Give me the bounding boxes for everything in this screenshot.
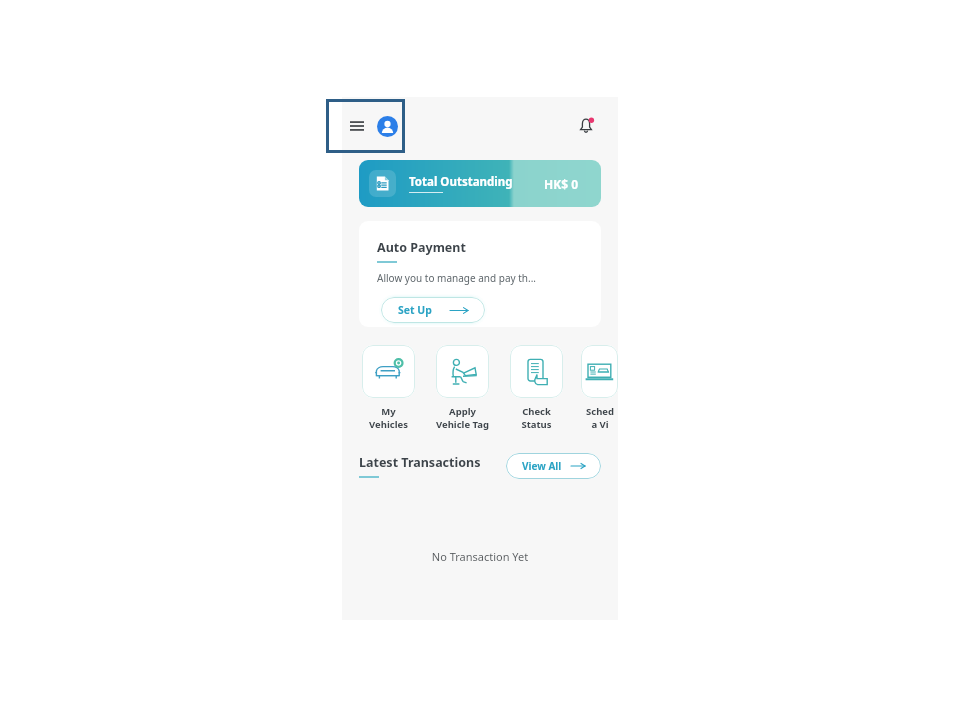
button[interactable]: Menu: [344, 113, 370, 139]
button[interactable]: My: [359, 345, 417, 431]
staticText: Latest Transactions: [359, 454, 481, 471]
staticText: Allow you to manage and pay th...: [377, 271, 537, 285]
staticText: Total Outstanding: [409, 174, 513, 190]
staticText: View All: [522, 459, 562, 473]
staticText: a Vi: [591, 418, 609, 431]
staticText: Apply: [449, 405, 476, 418]
button[interactable]: Sched: [581, 345, 618, 431]
button[interactable]: Total Outstanding: [359, 160, 601, 207]
staticText: Auto Payment: [377, 239, 466, 256]
staticText: My: [381, 405, 396, 418]
staticText: Sched: [586, 405, 614, 418]
button[interactable]: Check: [507, 345, 565, 431]
staticText: Status: [521, 418, 552, 431]
staticText: Vehicles: [369, 418, 408, 431]
button[interactable]: View All: [506, 453, 601, 479]
staticText: No Transaction Yet: [342, 549, 618, 564]
button[interactable]: Set Up: [381, 297, 485, 323]
staticText: Vehicle Tag: [436, 418, 489, 431]
staticText: HK$ 0: [544, 176, 578, 192]
staticText: Set Up: [398, 303, 432, 317]
button[interactable]: Notifications: [572, 112, 600, 140]
button[interactable]: Auto Payment: [359, 221, 601, 327]
button[interactable]: Apply: [433, 345, 491, 431]
button[interactable]: Profile: [374, 113, 400, 139]
staticText: Check: [522, 405, 551, 418]
